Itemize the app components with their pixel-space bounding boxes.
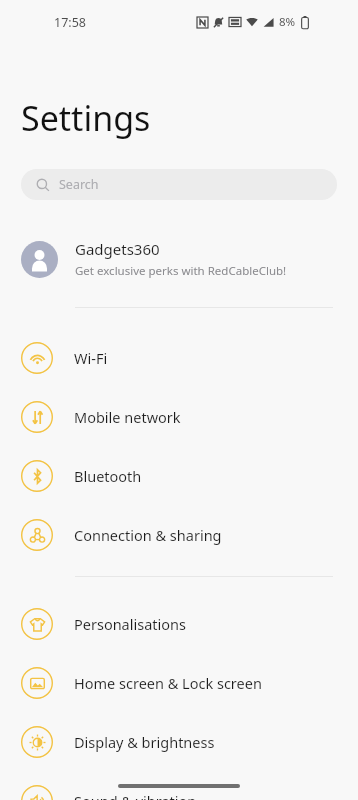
other: NFC [197, 17, 208, 28]
button[interactable]: Connection & sharing [0, 513, 358, 557]
staticText: Mobile network [74, 407, 181, 427]
button[interactable]: Sound & vibration [0, 779, 358, 800]
other: Battery [301, 16, 309, 29]
staticText: 8% [279, 14, 296, 30]
button[interactable]: Search [21, 169, 337, 200]
other: Cellular signal [263, 17, 274, 28]
staticText: 17:58 [54, 14, 86, 31]
staticText: Connection & sharing [74, 525, 222, 545]
staticText: Get exclusive perks with RedCableClub! [75, 263, 287, 279]
button[interactable]: Bluetooth [0, 454, 358, 498]
staticText: Home screen & Lock screen [74, 673, 262, 693]
other: VoWiFi [229, 16, 241, 28]
button[interactable]: Wi-Fi [0, 336, 358, 380]
other: Wi-Fi signal [246, 16, 258, 28]
button[interactable]: Home screen & Lock screen [0, 661, 358, 705]
staticText: Personalisations [74, 614, 186, 634]
staticText: Bluetooth [74, 466, 142, 486]
staticText: Wi-Fi [74, 348, 108, 368]
staticText: Search [59, 176, 99, 193]
button[interactable]: Display & brightness [0, 720, 358, 764]
staticText: Sound & vibration [74, 791, 197, 800]
button[interactable]: Gadgets360 [0, 231, 358, 287]
staticText: Gadgets360 [75, 239, 160, 259]
staticText: Settings [21, 95, 151, 141]
other: Silent mode [213, 17, 224, 28]
staticText: Display & brightness [74, 732, 215, 752]
button[interactable]: Personalisations [0, 602, 358, 646]
button[interactable]: Mobile network [0, 395, 358, 439]
